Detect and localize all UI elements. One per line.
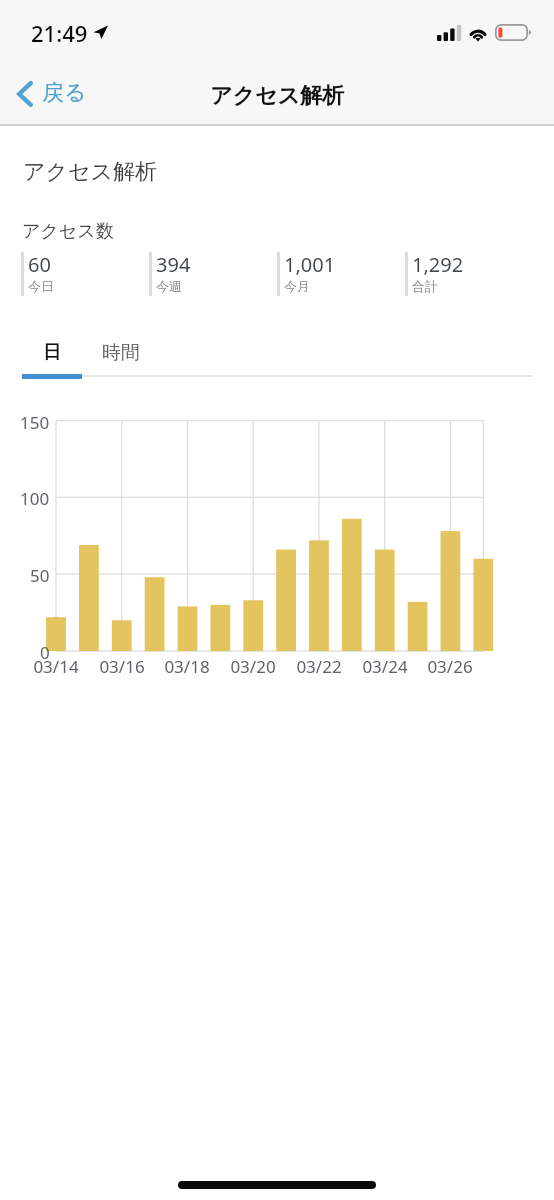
button[interactable]: 戻る bbox=[0, 64, 101, 124]
staticText: 03/24 bbox=[362, 655, 408, 678]
staticText: 今週 bbox=[156, 278, 182, 294]
staticText: 100 bbox=[20, 487, 50, 510]
staticText: 150 bbox=[20, 411, 50, 434]
button[interactable]: 時間 bbox=[82, 333, 160, 378]
button[interactable]: 日 bbox=[22, 333, 82, 378]
staticText: 394 bbox=[156, 251, 191, 278]
staticText: 日 bbox=[43, 341, 61, 364]
staticText: 21:49 bbox=[31, 18, 88, 48]
staticText: 03/16 bbox=[99, 655, 145, 678]
staticText: アクセス解析 bbox=[23, 158, 158, 186]
staticText: 1,001 bbox=[284, 251, 336, 278]
staticText: 03/26 bbox=[427, 655, 473, 678]
staticText: 0 bbox=[40, 641, 50, 664]
staticText: 1,292 bbox=[412, 251, 464, 278]
staticText: 50 bbox=[30, 564, 50, 587]
staticText: 03/20 bbox=[230, 655, 276, 678]
staticText: 03/22 bbox=[296, 655, 342, 678]
staticText: 03/14 bbox=[33, 655, 79, 678]
staticText: 合計 bbox=[412, 278, 438, 294]
staticText: 戻る bbox=[42, 79, 87, 107]
staticText: アクセス数 bbox=[22, 220, 114, 243]
staticText: 60 bbox=[28, 251, 51, 278]
staticText: 今日 bbox=[28, 278, 54, 294]
staticText: 時間 bbox=[102, 341, 140, 365]
staticText: アクセス解析 bbox=[0, 82, 554, 110]
staticText: 今月 bbox=[284, 278, 310, 294]
staticText: 03/18 bbox=[164, 655, 210, 678]
